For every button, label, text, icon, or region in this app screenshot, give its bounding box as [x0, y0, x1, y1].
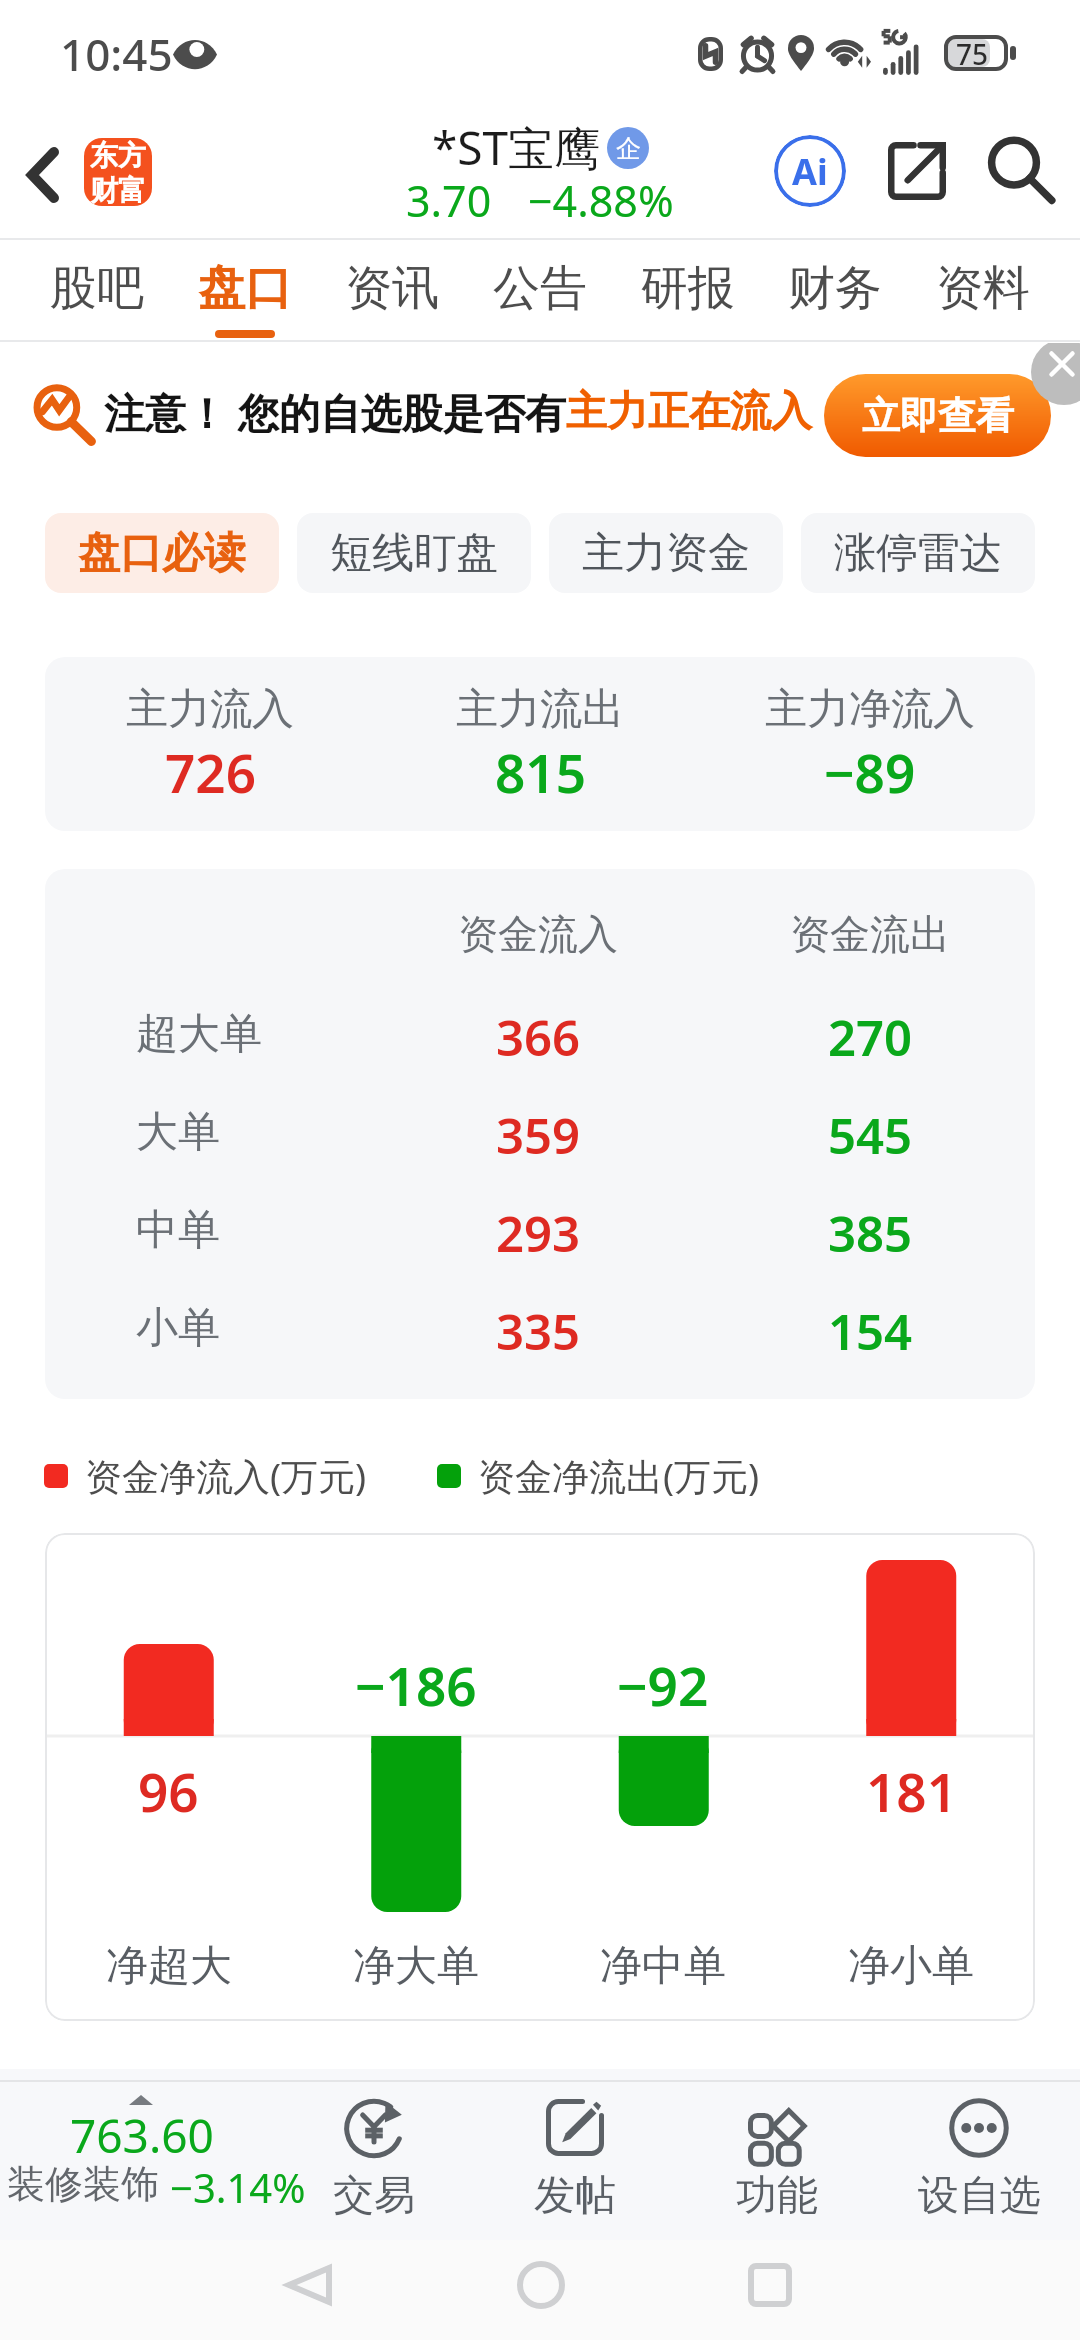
staticText: −92	[617, 1649, 709, 1721]
button[interactable]: 发帖	[474, 2082, 676, 2240]
staticText: 净大单	[353, 1940, 479, 1993]
staticText: 726	[165, 736, 256, 808]
staticText: 资金净流入(万元)	[85, 1450, 367, 1501]
staticText: 发帖	[534, 2170, 616, 2222]
staticText: 主力净流入	[765, 683, 975, 736]
staticText: 资金流出	[787, 909, 953, 959]
button[interactable]: 研报	[641, 241, 735, 338]
staticText: 设自选	[918, 2170, 1041, 2222]
button[interactable]: 交易	[273, 2082, 474, 2240]
staticText: 335	[455, 1298, 621, 1365]
button[interactable]: 公告	[493, 241, 587, 338]
button[interactable]: 功能	[676, 2082, 878, 2240]
button[interactable]: 股吧	[50, 241, 144, 338]
staticText: 75	[956, 35, 989, 71]
button[interactable]: 主力资金	[549, 513, 783, 593]
staticText: 股吧	[50, 259, 144, 318]
staticText: 短线盯盘	[330, 527, 498, 580]
staticText: 企	[616, 133, 641, 164]
staticText: 净中单	[600, 1940, 726, 1993]
staticText: 财务	[788, 259, 882, 318]
staticText: −89	[824, 736, 916, 808]
staticText: 注意！ 您的自选股是否有	[104, 384, 566, 440]
button[interactable]: 资料	[936, 241, 1030, 338]
staticText: 资金净流出(万元)	[478, 1450, 760, 1501]
staticText: 主力正在流入	[566, 386, 812, 438]
button[interactable]: Back	[264, 2240, 354, 2330]
staticText: 涨停雷达	[834, 527, 1002, 580]
staticText: 3.70	[406, 171, 492, 230]
button[interactable]: Search	[977, 127, 1065, 215]
staticText: 资料	[936, 259, 1030, 318]
staticText: 资金流入	[455, 909, 621, 959]
staticText: 366	[455, 1004, 621, 1071]
button[interactable]: Recent apps	[725, 2240, 815, 2330]
staticText: 中单	[136, 1204, 220, 1257]
button[interactable]: AI assistant	[766, 127, 854, 215]
button[interactable]: Home	[496, 2240, 586, 2330]
button[interactable]: Share	[873, 127, 961, 215]
staticText: 293	[455, 1200, 621, 1267]
staticText: 主力资金	[582, 527, 750, 580]
button[interactable]: 东方	[84, 138, 152, 206]
staticText: 交易	[333, 2170, 415, 2222]
staticText: −186	[355, 1649, 477, 1721]
staticText: 主力流入	[126, 683, 294, 736]
staticText: 96	[138, 1755, 199, 1827]
staticText: 270	[787, 1004, 953, 1071]
staticText: 公告	[493, 259, 587, 318]
staticText: 154	[787, 1298, 953, 1365]
staticText: 545	[787, 1102, 953, 1169]
staticText: 小单	[136, 1302, 220, 1355]
staticText: 盘口	[198, 259, 292, 318]
staticText: 大单	[136, 1106, 220, 1159]
button[interactable]: 财务	[788, 241, 882, 338]
staticText: 763.60	[70, 2104, 214, 2167]
staticText: 东方	[90, 138, 146, 173]
staticText: 超大单	[136, 1008, 262, 1061]
button[interactable]: 资讯	[345, 241, 439, 338]
staticText: 181	[866, 1755, 957, 1827]
button[interactable]: Close banner	[1031, 343, 1080, 405]
button[interactable]: 盘口必读	[45, 513, 279, 593]
staticText: 装修装饰	[7, 2160, 159, 2208]
staticText: *ST宝鹰	[432, 116, 601, 179]
staticText: Ai	[792, 147, 828, 196]
staticText: 资讯	[345, 259, 439, 318]
staticText: 净小单	[848, 1940, 974, 1993]
staticText: 净超大	[106, 1940, 232, 1993]
staticText: 立即查看	[862, 392, 1014, 440]
staticText: 盘口必读	[78, 527, 246, 580]
staticText: 财富	[90, 173, 146, 206]
button[interactable]: 设自选	[878, 2082, 1080, 2240]
staticText: 359	[455, 1102, 621, 1169]
staticText: 385	[787, 1200, 953, 1267]
staticText: 815	[495, 736, 586, 808]
staticText: 主力流出	[456, 683, 624, 736]
button[interactable]: 盘口	[198, 241, 292, 338]
button[interactable]: Back	[0, 132, 86, 218]
staticText: −3.14%	[170, 2160, 306, 2214]
button[interactable]: 短线盯盘	[297, 513, 531, 593]
button[interactable]: 涨停雷达	[801, 513, 1035, 593]
staticText: 功能	[736, 2170, 818, 2222]
staticText: −4.88%	[528, 171, 674, 230]
button[interactable]: 注意！ 您的自选股是否有	[30, 380, 812, 444]
staticText: 10:45	[60, 24, 173, 84]
button[interactable]: 立即查看	[824, 374, 1051, 457]
staticText: 研报	[641, 259, 735, 318]
button[interactable]: 763.60	[0, 2082, 273, 2145]
